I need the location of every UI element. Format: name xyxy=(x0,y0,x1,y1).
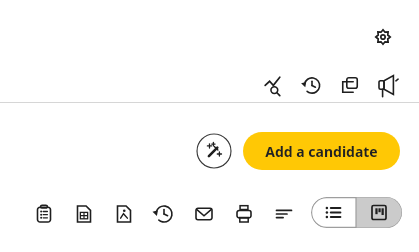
button[interactable]: List view xyxy=(311,197,356,228)
button[interactable]: Print xyxy=(226,196,262,232)
button[interactable]: Sort xyxy=(266,196,302,232)
button[interactable]: Auto generate xyxy=(196,133,232,169)
button[interactable]: Analytics search xyxy=(257,68,291,102)
staticText: Add a candidate xyxy=(265,142,378,161)
button[interactable]: Spreadsheet xyxy=(66,196,102,232)
button[interactable]: Report xyxy=(106,196,142,232)
button[interactable]: History xyxy=(295,68,329,102)
button[interactable]: History xyxy=(146,196,182,232)
button[interactable]: Announcements xyxy=(371,68,405,102)
button[interactable]: Mail xyxy=(186,196,222,232)
button[interactable]: Add a candidate xyxy=(243,132,400,170)
button[interactable]: Board view xyxy=(356,197,402,228)
button[interactable]: Duplicate xyxy=(333,68,367,102)
button[interactable]: Settings xyxy=(368,22,398,52)
button[interactable]: Notes xyxy=(26,196,62,232)
